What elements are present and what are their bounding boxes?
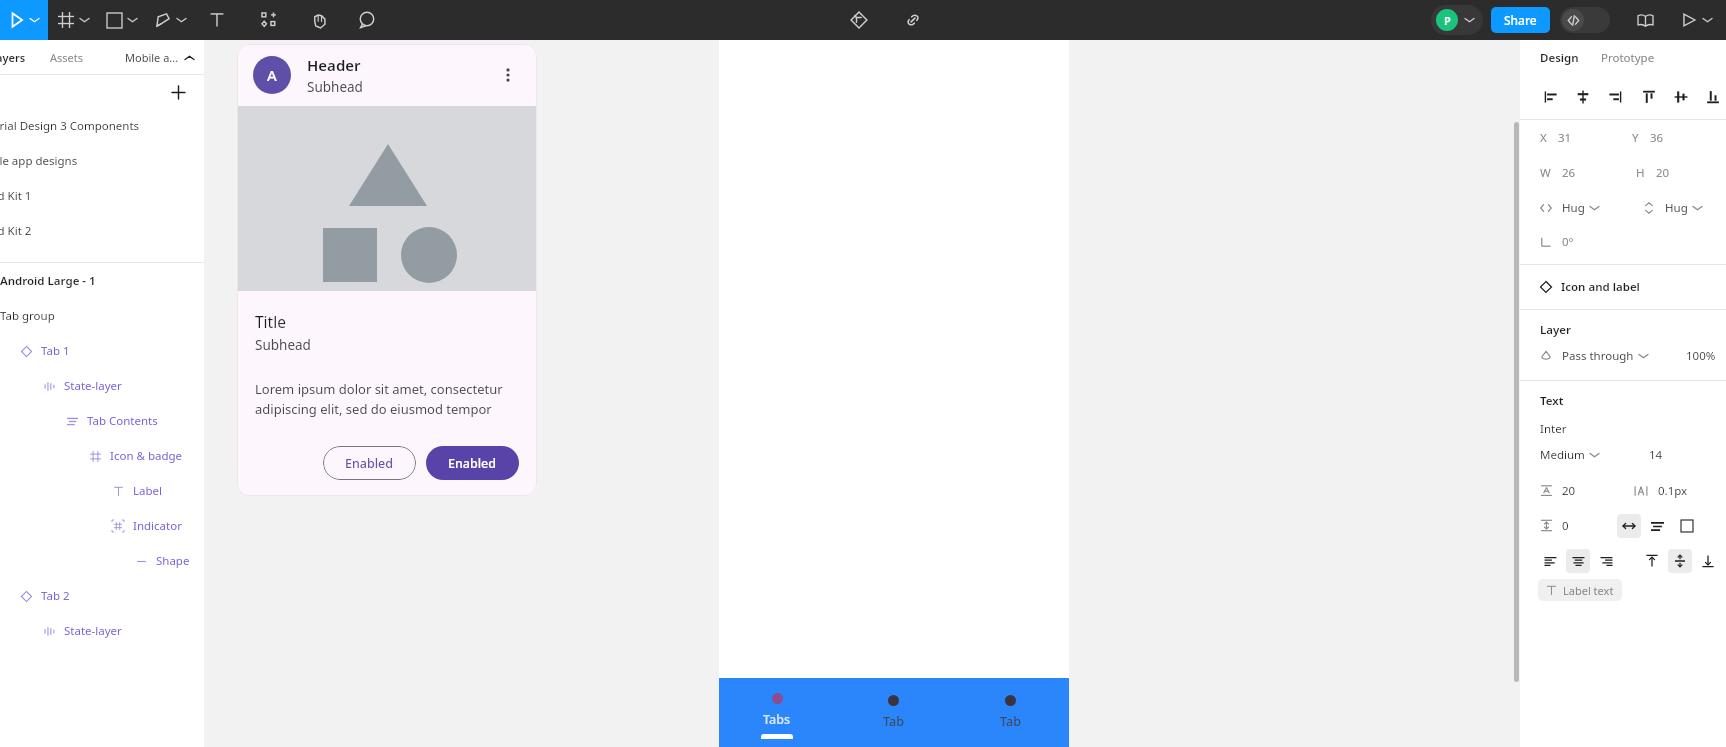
- staticText: Tab: [1000, 713, 1021, 730]
- button[interactable]: Hand tool: [306, 7, 332, 33]
- button[interactable]: Comment: [354, 7, 380, 33]
- button[interactable]: Align horizontal centers: [1574, 88, 1592, 106]
- staticText: State-layer: [64, 378, 122, 394]
- button[interactable]: Auto height: [1645, 514, 1669, 538]
- staticText: 20: [1562, 483, 1576, 499]
- staticText: Brand Kit 1: [0, 188, 32, 204]
- button[interactable]: Library: [1632, 7, 1658, 33]
- staticText: 0.1px: [1658, 483, 1688, 499]
- staticText: Enabled: [345, 455, 394, 472]
- button[interactable]: Hug: [1665, 200, 1702, 216]
- button[interactable]: Shape tool: [107, 7, 137, 33]
- button[interactable]: Align text right: [1594, 549, 1618, 573]
- button[interactable]: Dev mode: [1560, 7, 1610, 33]
- staticText: Lorem ipsum dolor sit amet, consectetur …: [255, 380, 519, 418]
- staticText: Header: [307, 55, 361, 75]
- button[interactable]: Material Design 3 Components: [0, 108, 204, 143]
- staticText: Subhead: [255, 336, 311, 354]
- button[interactable]: Present: [1682, 13, 1712, 27]
- button[interactable]: Shape: [0, 543, 204, 578]
- button[interactable]: Align text bottom: [1696, 549, 1720, 573]
- button[interactable]: Align text left: [1538, 549, 1562, 573]
- button[interactable]: Tab: [835, 678, 952, 747]
- button[interactable]: Icon and label: [1540, 265, 1726, 309]
- button[interactable]: Text tool: [204, 7, 230, 33]
- button[interactable]: Align text center: [1566, 549, 1590, 573]
- staticText: Text: [1540, 393, 1564, 409]
- button[interactable]: Align left: [1542, 88, 1560, 106]
- button[interactable]: Assets: [42, 50, 92, 65]
- button[interactable]: Enabled: [323, 446, 416, 480]
- button[interactable]: Frame tool: [58, 7, 89, 33]
- button[interactable]: Align top: [1640, 88, 1658, 106]
- staticText: Layer: [1540, 322, 1572, 338]
- staticText: Tab 1: [41, 343, 70, 359]
- staticText: Subhead: [307, 78, 363, 96]
- button[interactable]: Hug: [1562, 200, 1599, 216]
- button[interactable]: Tabs: [719, 678, 835, 747]
- staticText: Share: [1504, 12, 1537, 28]
- button[interactable]: Share: [1491, 7, 1550, 33]
- button[interactable]: Component: [846, 7, 872, 33]
- staticText: Label: [133, 483, 163, 499]
- staticText: Icon & badge: [110, 448, 183, 464]
- button[interactable]: Pass through: [1562, 348, 1648, 364]
- staticText: Hug: [1562, 200, 1585, 216]
- button[interactable]: Tab: [952, 678, 1069, 747]
- button[interactable]: Components: [256, 7, 282, 33]
- staticText: Android Large - 1: [0, 273, 96, 289]
- button[interactable]: Link: [900, 7, 926, 33]
- button[interactable]: Add page: [168, 82, 188, 102]
- staticText: Mobile a...: [125, 50, 179, 65]
- button[interactable]: Design: [1538, 44, 1581, 72]
- staticText: 0: [1562, 518, 1569, 534]
- button[interactable]: Icon & badge: [0, 438, 204, 473]
- button[interactable]: Mobile app designs: [0, 143, 204, 178]
- button[interactable]: Align vertical centers: [1672, 88, 1690, 106]
- button[interactable]: Align bottom: [1704, 88, 1722, 106]
- staticText: Title: [255, 311, 286, 332]
- button[interactable]: Move tool: [0, 0, 48, 40]
- button[interactable]: State-layer: [0, 368, 204, 403]
- staticText: State-layer: [64, 623, 122, 639]
- staticText: 20: [1656, 165, 1670, 181]
- staticText: 0°: [1562, 234, 1574, 250]
- staticText: Tab: [883, 713, 904, 730]
- button[interactable]: Layers: [0, 50, 34, 65]
- button[interactable]: Pen tool: [155, 7, 186, 33]
- button[interactable]: Fixed size: [1675, 514, 1699, 538]
- staticText: Tab group: [0, 308, 55, 324]
- button[interactable]: Mobile a...: [125, 50, 194, 65]
- staticText: Label text: [1563, 583, 1614, 598]
- button[interactable]: Brand Kit 2: [0, 213, 204, 248]
- button[interactable]: Enabled: [426, 446, 519, 480]
- button[interactable]: Prototype: [1599, 44, 1657, 72]
- button[interactable]: Auto width: [1617, 514, 1641, 538]
- staticText: H: [1636, 165, 1645, 181]
- staticText: Tab Contents: [87, 413, 158, 429]
- button[interactable]: Align text top: [1640, 549, 1664, 573]
- button[interactable]: P: [1431, 5, 1483, 35]
- staticText: Enabled: [448, 455, 497, 472]
- button[interactable]: Medium: [1540, 447, 1599, 463]
- staticText: Brand Kit 2: [0, 223, 32, 239]
- button[interactable]: Android Large - 1: [0, 263, 204, 298]
- button[interactable]: Tab Contents: [0, 403, 204, 438]
- button[interactable]: Label text: [1538, 579, 1622, 601]
- button[interactable]: Align right: [1606, 88, 1624, 106]
- button[interactable]: Align text middle: [1668, 549, 1692, 573]
- button[interactable]: Label: [0, 473, 204, 508]
- button[interactable]: Indicator: [0, 508, 204, 543]
- staticText: Design: [1540, 50, 1579, 66]
- staticText: Assets: [50, 50, 84, 65]
- staticText: 36: [1650, 130, 1664, 146]
- button[interactable]: Brand Kit 1: [0, 178, 204, 213]
- button[interactable]: More options: [495, 62, 521, 88]
- button[interactable]: State-layer: [0, 613, 204, 648]
- button[interactable]: Tab 1: [0, 333, 204, 368]
- button[interactable]: Inter: [1540, 421, 1567, 437]
- staticText: Indicator: [133, 518, 182, 534]
- button[interactable]: Tab group: [0, 298, 204, 333]
- staticText: Layers: [0, 50, 26, 65]
- button[interactable]: Tab 2: [0, 578, 204, 613]
